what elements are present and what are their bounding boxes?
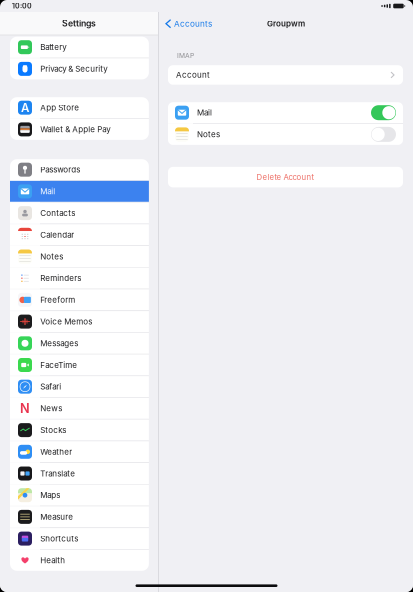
staticText: Health [40, 555, 65, 565]
staticText: Weather [40, 447, 72, 457]
button[interactable]: Messages [10, 333, 149, 354]
button[interactable]: Translate [10, 463, 149, 484]
button[interactable]: Account [168, 65, 403, 85]
staticText: Contacts [40, 208, 75, 218]
staticText: Accounts [174, 19, 212, 29]
button[interactable]: Calendar [10, 224, 149, 245]
button[interactable]: Mail [10, 181, 149, 202]
staticText: 10:00 [12, 2, 32, 10]
button[interactable]: Reminders [10, 268, 149, 289]
button[interactable]: A [10, 97, 149, 118]
button[interactable]: Maps [10, 485, 149, 506]
button[interactable]: Wallet & Apple Pay [10, 119, 149, 140]
button[interactable]: Passwords [10, 159, 149, 180]
button[interactable]: Delete Account [168, 167, 403, 187]
staticText: Notes [40, 252, 63, 261]
button[interactable]: Health [10, 550, 149, 571]
staticText: App Store [40, 103, 79, 113]
staticText: Groupwm [267, 19, 305, 29]
staticText: Stocks [40, 425, 66, 435]
button[interactable]: Privacy & Security [10, 58, 149, 79]
staticText: Measure [40, 512, 73, 522]
staticText: Translate [40, 469, 75, 478]
staticText: Mail [197, 108, 212, 118]
button[interactable]: Notes [10, 246, 149, 267]
staticText: Settings [62, 18, 96, 29]
staticText: Messages [40, 338, 78, 348]
staticText: Notes [197, 130, 220, 139]
staticText: Maps [40, 490, 60, 500]
button[interactable]: Accounts [159, 14, 212, 34]
staticText: Account [176, 70, 210, 80]
button[interactable]: Mail [371, 105, 396, 120]
button[interactable]: Measure [10, 506, 149, 527]
button[interactable]: Contacts [10, 203, 149, 224]
staticText: Mail [40, 187, 55, 196]
button[interactable]: Notes [371, 127, 396, 142]
staticText: Passwords [40, 165, 80, 175]
button[interactable]: Weather [10, 441, 149, 462]
staticText: IMAP [177, 52, 194, 60]
staticText: N [20, 401, 30, 416]
staticText: Wallet & Apple Pay [40, 125, 110, 134]
staticText: Voice Memos [40, 317, 92, 326]
staticText: Privacy & Security [40, 64, 107, 74]
button[interactable]: Voice Memos [10, 311, 149, 332]
staticText: FaceTime [40, 360, 77, 370]
button[interactable]: Shortcuts [10, 528, 149, 549]
button[interactable]: Freeform [10, 289, 149, 310]
button[interactable]: Safari [10, 376, 149, 397]
staticText: Freeform [40, 295, 75, 305]
staticText: A [21, 101, 29, 115]
staticText: Battery [40, 42, 66, 52]
button[interactable]: Battery [10, 37, 149, 58]
staticText: News [40, 404, 62, 413]
staticText: Reminders [40, 273, 81, 283]
staticText: Shortcuts [40, 534, 78, 543]
staticText: Delete Account [256, 172, 314, 182]
button[interactable]: FaceTime [10, 354, 149, 375]
staticText: Safari [40, 382, 61, 392]
staticText: Calendar [40, 230, 74, 240]
button[interactable]: N [10, 398, 149, 419]
button[interactable]: Stocks [10, 420, 149, 441]
